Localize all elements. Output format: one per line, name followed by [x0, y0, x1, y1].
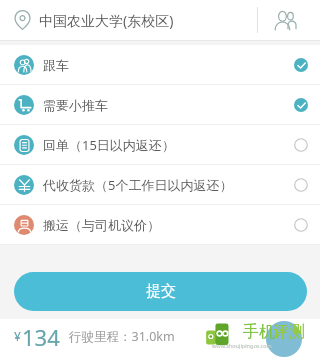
staticText: 需要小推车 — [43, 97, 108, 113]
button[interactable]: 代收货款（5个工作日以内返还） — [0, 165, 320, 204]
button[interactable]: Contacts — [258, 0, 320, 40]
staticText: 手机 — [243, 322, 275, 342]
staticText: www.shoujipingce.com — [212, 342, 272, 349]
staticText: 跟车 — [43, 57, 69, 73]
staticText: 评测 — [273, 322, 305, 342]
button[interactable]: 需要小推车 — [0, 85, 320, 124]
staticText: 行驶里程：31.0km — [69, 328, 175, 345]
button[interactable]: 跟车 — [0, 45, 320, 84]
staticText: 134 — [22, 322, 60, 352]
button[interactable]: 回单（15日以内返还） — [0, 125, 320, 164]
staticText: ¥ — [14, 328, 21, 344]
button[interactable]: 提交 — [14, 272, 307, 311]
button[interactable]: 搬运（与司机议价） — [0, 205, 320, 244]
staticText: 提交 — [146, 282, 176, 301]
staticText: 代收货款（5个工作日以内返还） — [43, 176, 233, 194]
staticText: 回单（15日以内返还） — [43, 136, 175, 154]
staticText: 搬运（与司机议价） — [43, 217, 160, 233]
staticText: 中国农业大学(东校区) — [39, 11, 174, 30]
button[interactable]: 中国农业大学(东校区) — [0, 0, 257, 40]
